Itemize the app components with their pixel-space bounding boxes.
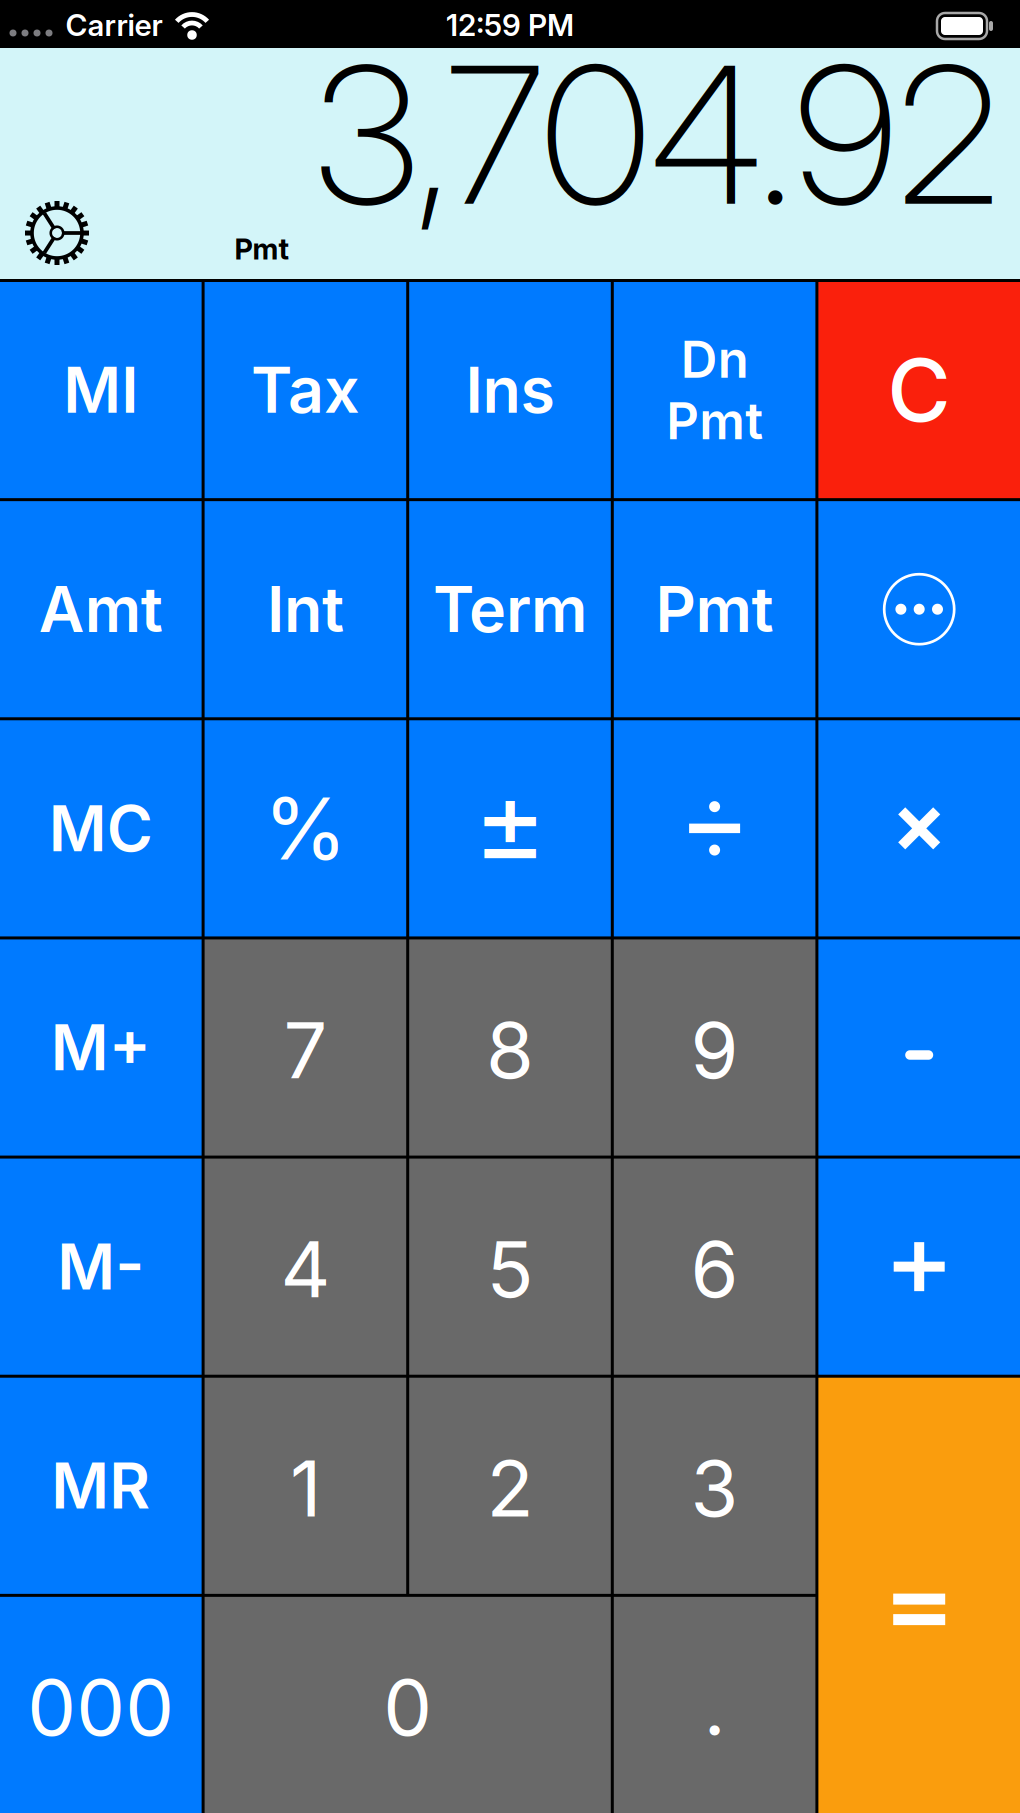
button[interactable]: Minus bbox=[818, 939, 1020, 1155]
button[interactable]: MI bbox=[0, 282, 202, 498]
staticText: M- bbox=[57, 1229, 144, 1304]
staticText: % bbox=[263, 777, 347, 880]
button[interactable]: Pmt bbox=[614, 501, 815, 717]
button[interactable]: Ins bbox=[409, 282, 611, 498]
staticText: 5 bbox=[486, 1222, 533, 1316]
button[interactable]: M+ bbox=[0, 939, 202, 1155]
button[interactable]: M- bbox=[0, 1159, 202, 1375]
button[interactable]: 1 bbox=[205, 1378, 406, 1594]
button[interactable]: Divide bbox=[614, 720, 815, 936]
button[interactable]: Settings bbox=[22, 198, 92, 268]
button[interactable]: 000 bbox=[0, 1597, 202, 1813]
button[interactable]: MC bbox=[0, 720, 202, 936]
staticText: ± bbox=[473, 754, 547, 889]
button[interactable]: More functions bbox=[818, 501, 1020, 717]
staticText: MI bbox=[63, 352, 138, 428]
button[interactable]: Multiply bbox=[818, 720, 1020, 936]
staticText: 1 bbox=[290, 1441, 321, 1535]
staticText: Pmt bbox=[234, 232, 289, 266]
button[interactable]: 5 bbox=[409, 1159, 611, 1375]
button[interactable]: Equals bbox=[818, 1378, 1020, 1813]
button[interactable]: Int bbox=[205, 501, 406, 717]
button[interactable]: % bbox=[205, 720, 406, 936]
button[interactable]: 9 bbox=[614, 939, 815, 1155]
staticText: Carrier bbox=[65, 7, 162, 43]
staticText: 0 bbox=[383, 1661, 432, 1754]
staticText: 7 bbox=[283, 1003, 327, 1097]
staticText: MC bbox=[49, 790, 153, 866]
staticText: 3 bbox=[691, 1441, 739, 1535]
button[interactable]: 8 bbox=[409, 939, 611, 1155]
button[interactable]: 7 bbox=[205, 939, 406, 1155]
button[interactable]: Amt bbox=[0, 501, 202, 717]
staticText: Term bbox=[433, 571, 587, 647]
button[interactable]: Plus bbox=[818, 1159, 1020, 1375]
button[interactable]: MR bbox=[0, 1378, 202, 1594]
button[interactable]: . bbox=[614, 1597, 815, 1813]
staticText: Tax bbox=[251, 352, 360, 428]
staticText: 9 bbox=[691, 1003, 739, 1097]
button[interactable]: 6 bbox=[614, 1159, 815, 1375]
staticText: Pmt bbox=[656, 571, 774, 647]
staticText: Dn Pmt bbox=[666, 329, 763, 451]
button[interactable]: Tax bbox=[205, 282, 406, 498]
staticText: C bbox=[887, 338, 951, 442]
button[interactable]: ± bbox=[409, 720, 611, 936]
staticText: 8 bbox=[486, 1003, 534, 1097]
staticText: 2 bbox=[486, 1441, 533, 1535]
staticText: Amt bbox=[39, 571, 163, 647]
button[interactable]: 4 bbox=[205, 1159, 406, 1375]
staticText: Ins bbox=[465, 352, 554, 428]
button[interactable]: C bbox=[818, 282, 1020, 498]
staticText: MR bbox=[51, 1448, 150, 1524]
staticText: 4 bbox=[280, 1222, 330, 1316]
staticText: 000 bbox=[27, 1661, 174, 1754]
staticText: Int bbox=[267, 571, 344, 647]
staticText: 3,704.92 bbox=[314, 20, 1000, 250]
button[interactable]: 3 bbox=[614, 1378, 815, 1594]
button[interactable]: Term bbox=[409, 501, 611, 717]
staticText: 6 bbox=[691, 1222, 739, 1316]
button[interactable]: Dn Pmt bbox=[614, 282, 815, 498]
button[interactable]: 2 bbox=[409, 1378, 611, 1594]
staticText: M+ bbox=[51, 1010, 151, 1085]
staticText: . bbox=[704, 1661, 726, 1754]
staticText: 12:59 PM bbox=[446, 7, 574, 43]
button[interactable]: 0 bbox=[205, 1597, 611, 1813]
